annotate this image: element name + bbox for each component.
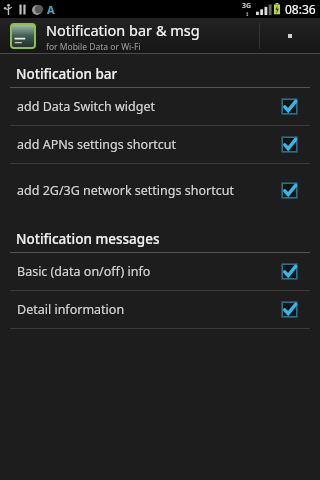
staticText: for Mobile Data or Wi-Fi	[46, 41, 141, 53]
staticText: 08:36	[285, 1, 316, 17]
staticText: Notification bar	[16, 65, 118, 83]
button[interactable]: Detail information	[0, 291, 320, 328]
button[interactable]: add APNs settings shortcut	[0, 126, 320, 163]
button[interactable]: add 2G/3G network settings shortcut	[0, 164, 320, 216]
staticText: Basic (data on/off) info	[17, 263, 273, 280]
button[interactable]: Basic (data on/off) info	[0, 253, 320, 290]
staticText: add 2G/3G network settings shortcut	[17, 182, 273, 199]
staticText: A	[47, 2, 55, 17]
staticText: 3G	[242, 1, 252, 11]
staticText: Notification messages	[16, 230, 160, 248]
staticText: Detail information	[17, 301, 273, 318]
button[interactable]: add Data Switch widget	[0, 88, 320, 125]
staticText: Notification bar & msg	[46, 20, 200, 40]
button[interactable]: More options	[260, 18, 320, 54]
staticText: ↕	[245, 11, 250, 17]
staticText: add APNs settings shortcut	[17, 136, 273, 153]
staticText: add Data Switch widget	[17, 98, 273, 115]
